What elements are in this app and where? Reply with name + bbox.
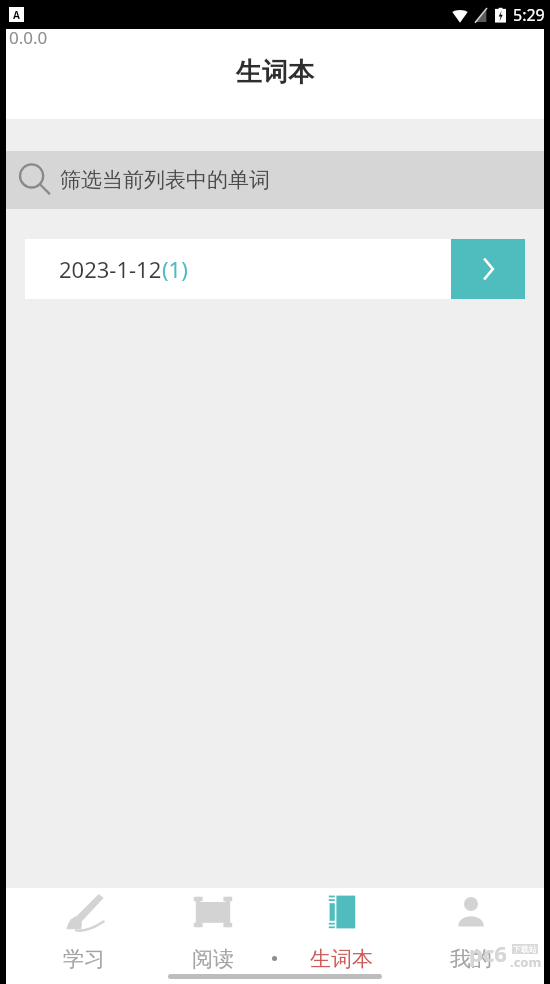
staticText: A: [13, 8, 20, 22]
staticText: 2023-1-12: [59, 254, 162, 284]
staticText: (1): [162, 254, 188, 284]
staticText: 我的: [450, 946, 492, 972]
staticText: 学习: [63, 946, 105, 972]
staticText: 生词本: [236, 56, 314, 89]
button[interactable]: 学习: [20, 888, 148, 984]
staticText: pc6: [469, 938, 507, 968]
button[interactable]: 生词本: [277, 888, 406, 984]
staticText: 0.0.0: [9, 26, 48, 49]
staticText: 筛选当前列表中的单词: [60, 167, 270, 193]
staticText: .com: [510, 953, 542, 971]
staticText: 下载站: [513, 944, 537, 954]
button[interactable]: 我的: [406, 888, 535, 984]
staticText: 5:29: [513, 4, 545, 26]
button[interactable]: 阅读: [148, 888, 277, 984]
button[interactable]: 2023-1-12: [25, 239, 525, 299]
button[interactable]: Search words in current list: [6, 151, 544, 209]
button[interactable]: Open list: [451, 239, 525, 299]
staticText: 生词本: [310, 946, 373, 972]
staticText: 阅读: [192, 946, 234, 972]
